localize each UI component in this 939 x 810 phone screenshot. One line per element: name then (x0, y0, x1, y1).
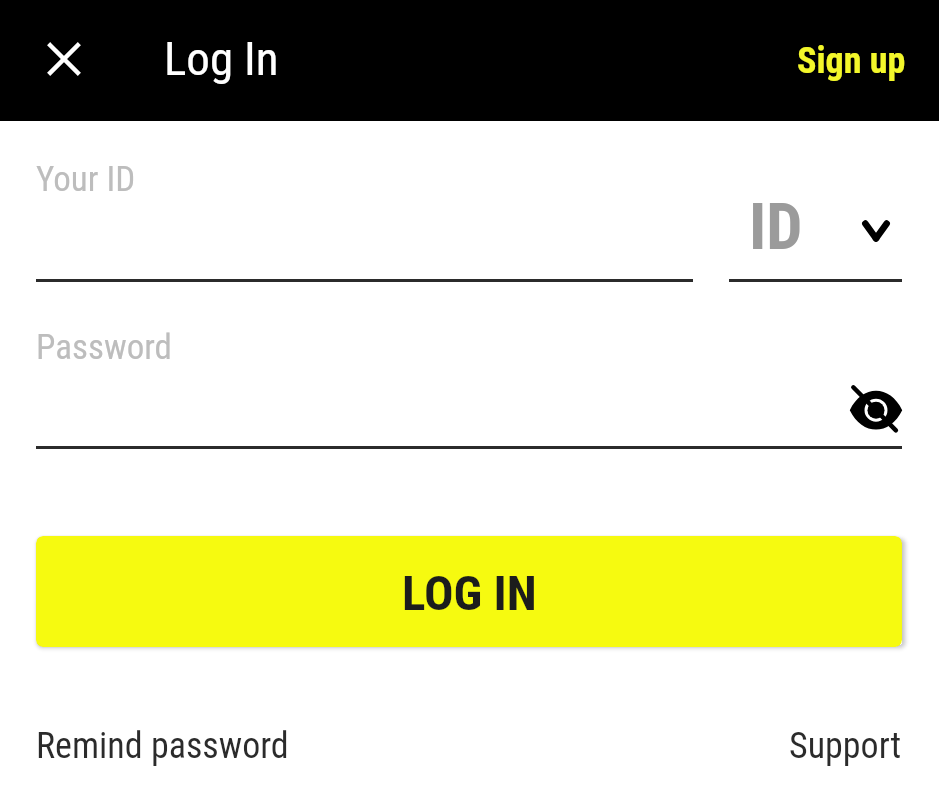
button[interactable]: Sign up (781, 28, 922, 94)
button[interactable]: Support (789, 725, 902, 767)
staticText: LOG IN (402, 565, 537, 622)
staticText: Password (36, 327, 172, 368)
button[interactable]: Show password (845, 377, 907, 439)
button[interactable]: Password (36, 318, 902, 449)
staticText: Remind password (36, 725, 289, 767)
button[interactable]: Close (32, 27, 96, 91)
staticText: ID (749, 190, 803, 265)
button[interactable]: Your ID (36, 150, 693, 282)
staticText: Your ID (36, 159, 136, 200)
staticText: Support (789, 725, 902, 767)
button[interactable]: LOG IN (36, 536, 902, 647)
staticText: Log In (164, 31, 279, 86)
staticText: Sign up (797, 40, 906, 82)
button[interactable]: Remind password (36, 725, 289, 767)
button[interactable]: ID type (729, 160, 903, 282)
